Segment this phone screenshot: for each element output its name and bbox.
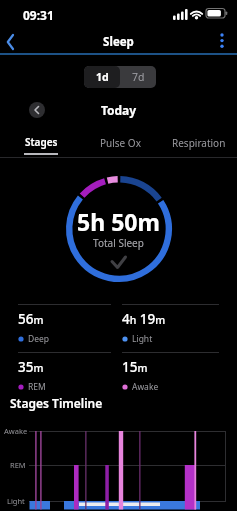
staticText: Today	[0, 102, 237, 118]
button[interactable]: Respiration	[168, 133, 230, 153]
button[interactable]: 15m	[122, 358, 212, 402]
staticText: REM	[28, 381, 46, 393]
staticText: Light	[7, 496, 25, 506]
staticText: Sleep	[0, 34, 237, 50]
staticText: Awake	[4, 426, 28, 436]
button[interactable]: Pulse Ox	[95, 133, 145, 153]
staticText: Awake	[132, 381, 159, 393]
staticText: Light	[132, 333, 153, 345]
staticText: 15m	[122, 358, 148, 376]
button[interactable]: 4h 19m	[122, 310, 212, 354]
button[interactable]	[29, 102, 45, 118]
staticText: 56m	[18, 310, 44, 328]
staticText: Stages	[25, 135, 58, 149]
button[interactable]: 56m	[18, 310, 108, 354]
staticText: 09:31	[23, 7, 54, 23]
staticText: Pulse Ox	[100, 136, 141, 150]
staticText: Deep	[28, 333, 50, 345]
button[interactable]: 1d	[84, 66, 120, 88]
staticText: Respiration	[172, 136, 226, 150]
staticText: 1d	[96, 70, 109, 84]
staticText: 5h 50m	[0, 206, 237, 237]
staticText: REM	[10, 460, 26, 470]
staticText: Total Sleep	[0, 236, 237, 250]
button[interactable]: 7d	[120, 66, 156, 88]
button[interactable]: 35m	[18, 358, 108, 402]
button[interactable]	[212, 30, 232, 52]
staticText: 35m	[18, 358, 44, 376]
staticText: 7d	[132, 70, 145, 84]
staticText: Stages Timeline	[10, 395, 103, 411]
button[interactable]: Stages	[24, 135, 58, 155]
button[interactable]	[2, 29, 26, 53]
staticText: 4h 19m	[122, 310, 166, 328]
